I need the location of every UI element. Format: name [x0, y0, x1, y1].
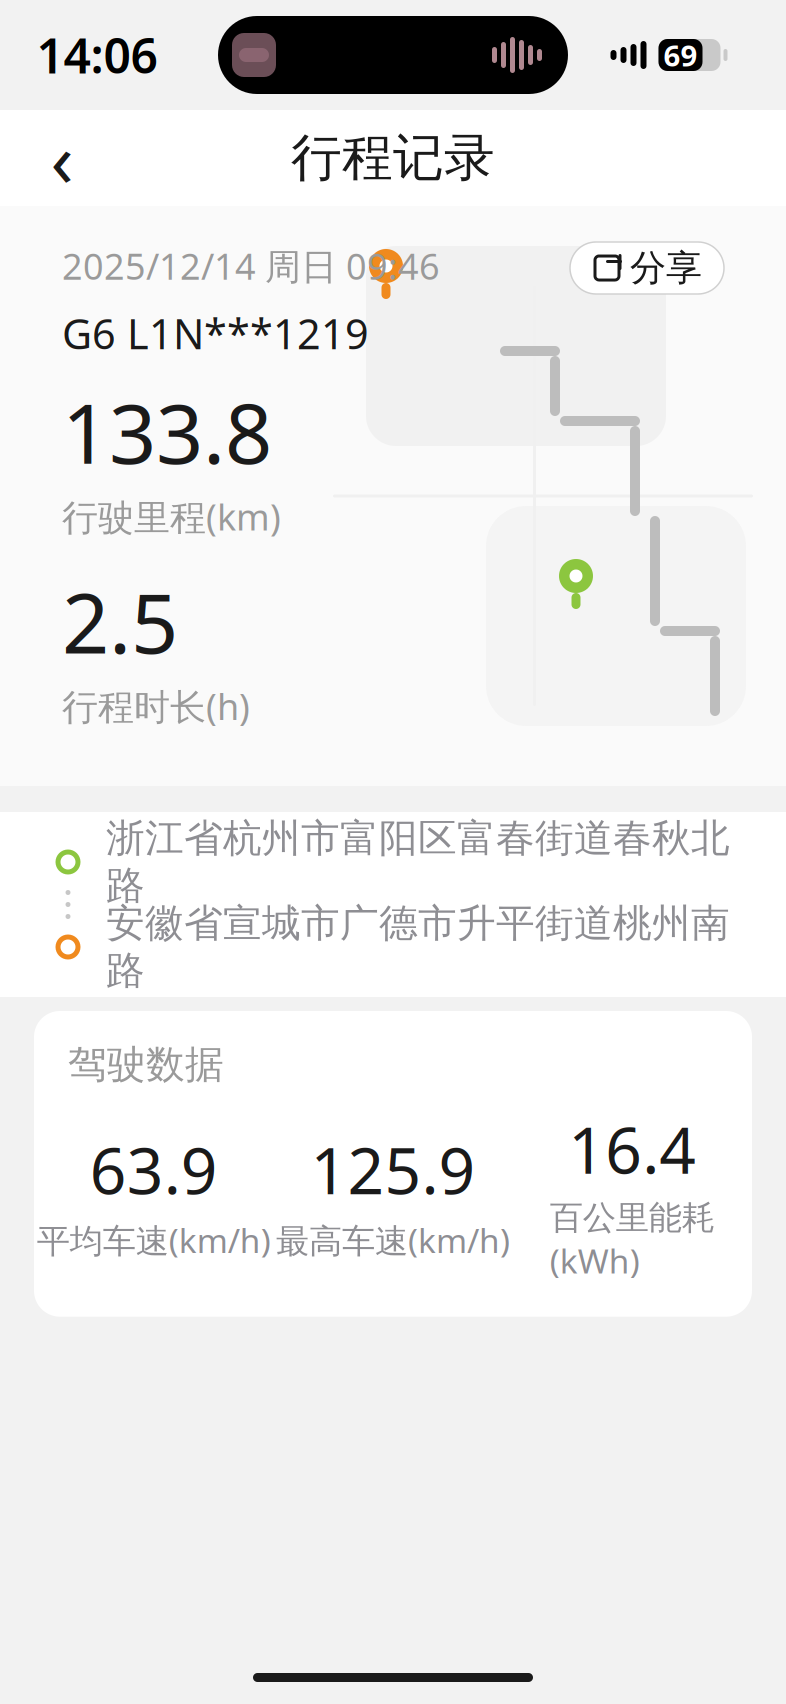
staticText: 69	[663, 35, 697, 74]
staticText: 14:06	[36, 23, 157, 87]
staticText: 63.9	[90, 1127, 218, 1212]
staticText: 百公里能耗(kWh)	[550, 1197, 715, 1283]
staticText: 133.8	[62, 377, 272, 487]
staticText: 最高车速(km/h)	[276, 1218, 510, 1262]
staticText: 浙江省杭州市富阳区富春街道春秋北路	[106, 814, 730, 909]
staticText: 16.4	[568, 1106, 696, 1191]
button[interactable]: 返回	[22, 118, 102, 198]
staticText: 2.5	[62, 566, 178, 676]
staticText: 125.9	[310, 1127, 475, 1212]
staticText: 行驶里程(km)	[62, 493, 281, 540]
staticText: G6 L1N***1219	[62, 306, 369, 361]
staticText: 2025/12/14 周日 09:46	[62, 242, 440, 290]
staticText: ‹	[50, 108, 73, 208]
staticText: 平均车速(km/h)	[37, 1218, 271, 1262]
staticText: 安徽省宣城市广德市升平街道桃州南路	[106, 899, 730, 994]
staticText: 行程记录	[291, 127, 495, 189]
staticText: 驾驶数据	[68, 1041, 224, 1088]
button[interactable]: 分享	[570, 242, 724, 294]
staticText: 行程时长(h)	[62, 682, 250, 730]
staticText: 分享	[630, 246, 702, 290]
